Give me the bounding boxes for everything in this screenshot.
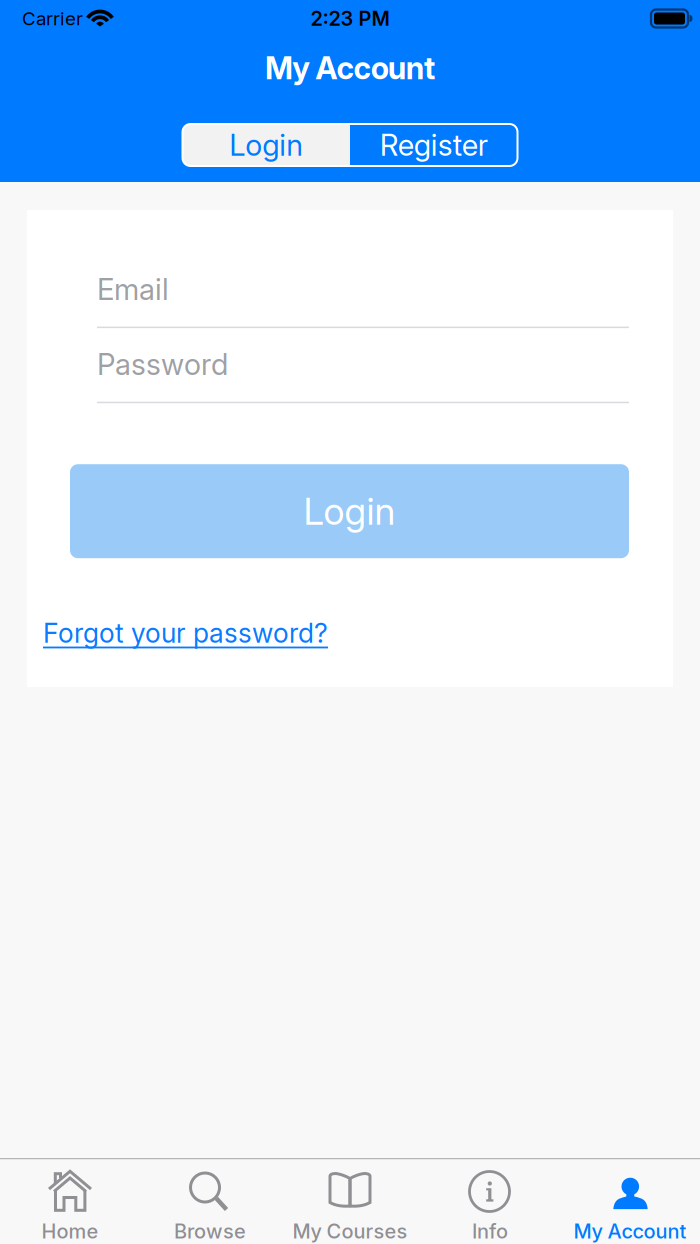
staticText: Info: [472, 1219, 508, 1243]
staticText: Browse: [174, 1219, 246, 1243]
staticText: Register: [380, 128, 488, 162]
staticText: Password: [97, 347, 228, 382]
staticText: Login: [229, 128, 303, 162]
staticText: Login: [303, 489, 395, 533]
staticText: 2:23 PM: [310, 7, 389, 30]
staticText: My Account: [573, 1219, 686, 1243]
staticText: Carrier: [22, 7, 83, 29]
staticText: My Courses: [292, 1219, 407, 1243]
staticText: My Account: [265, 50, 435, 86]
staticText: Home: [41, 1219, 98, 1243]
staticText: Email: [97, 272, 169, 307]
staticText: Forgot your password?: [43, 617, 328, 649]
